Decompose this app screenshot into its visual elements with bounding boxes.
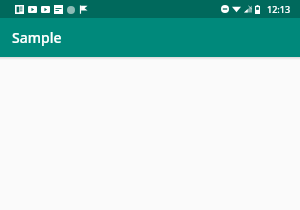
staticText: Sample: [12, 28, 62, 47]
staticText: 12:13: [267, 3, 291, 15]
